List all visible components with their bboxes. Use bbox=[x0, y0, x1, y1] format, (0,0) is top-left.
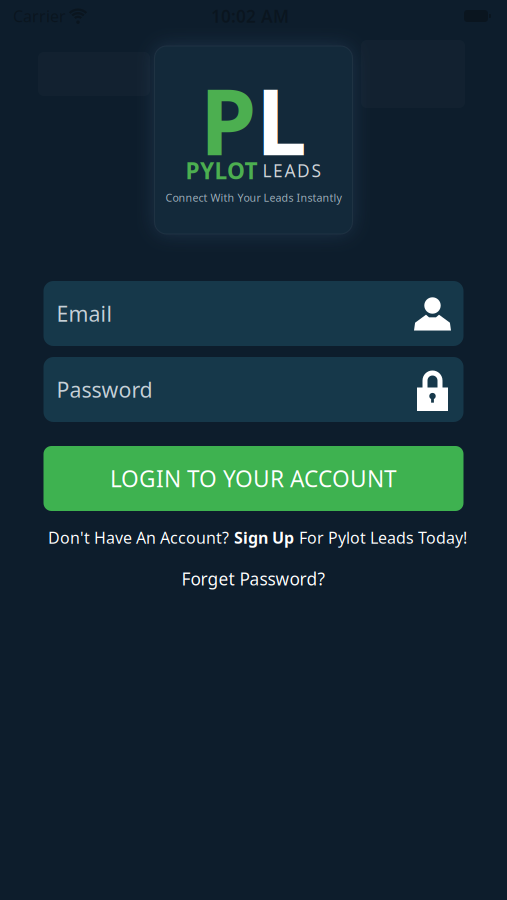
staticText: Email bbox=[56, 299, 112, 328]
staticText: PYLOT bbox=[185, 155, 257, 186]
button[interactable]: Password bbox=[43, 357, 463, 422]
staticText: 10:02 AM bbox=[211, 4, 289, 27]
staticText: For Pylot Leads Today! bbox=[299, 527, 467, 548]
staticText: Carrier bbox=[13, 5, 66, 27]
staticText: Forget Password? bbox=[181, 567, 325, 590]
button[interactable]: Email bbox=[43, 281, 463, 346]
staticText: P bbox=[200, 60, 256, 180]
staticText: Connect With Your Leads Instantly bbox=[165, 190, 341, 205]
staticText: LOGIN TO YOUR ACCOUNT bbox=[110, 463, 397, 493]
staticText: Don't Have An Account? bbox=[48, 527, 229, 548]
staticText: L bbox=[256, 60, 307, 180]
staticText: Sign Up bbox=[234, 527, 294, 548]
button[interactable]: Forget Password? bbox=[181, 567, 325, 590]
staticText: LEADS bbox=[262, 159, 321, 182]
button[interactable]: LOGIN TO YOUR ACCOUNT bbox=[43, 446, 463, 511]
staticText: Password bbox=[56, 375, 152, 404]
button[interactable]: Sign Up bbox=[234, 527, 294, 548]
